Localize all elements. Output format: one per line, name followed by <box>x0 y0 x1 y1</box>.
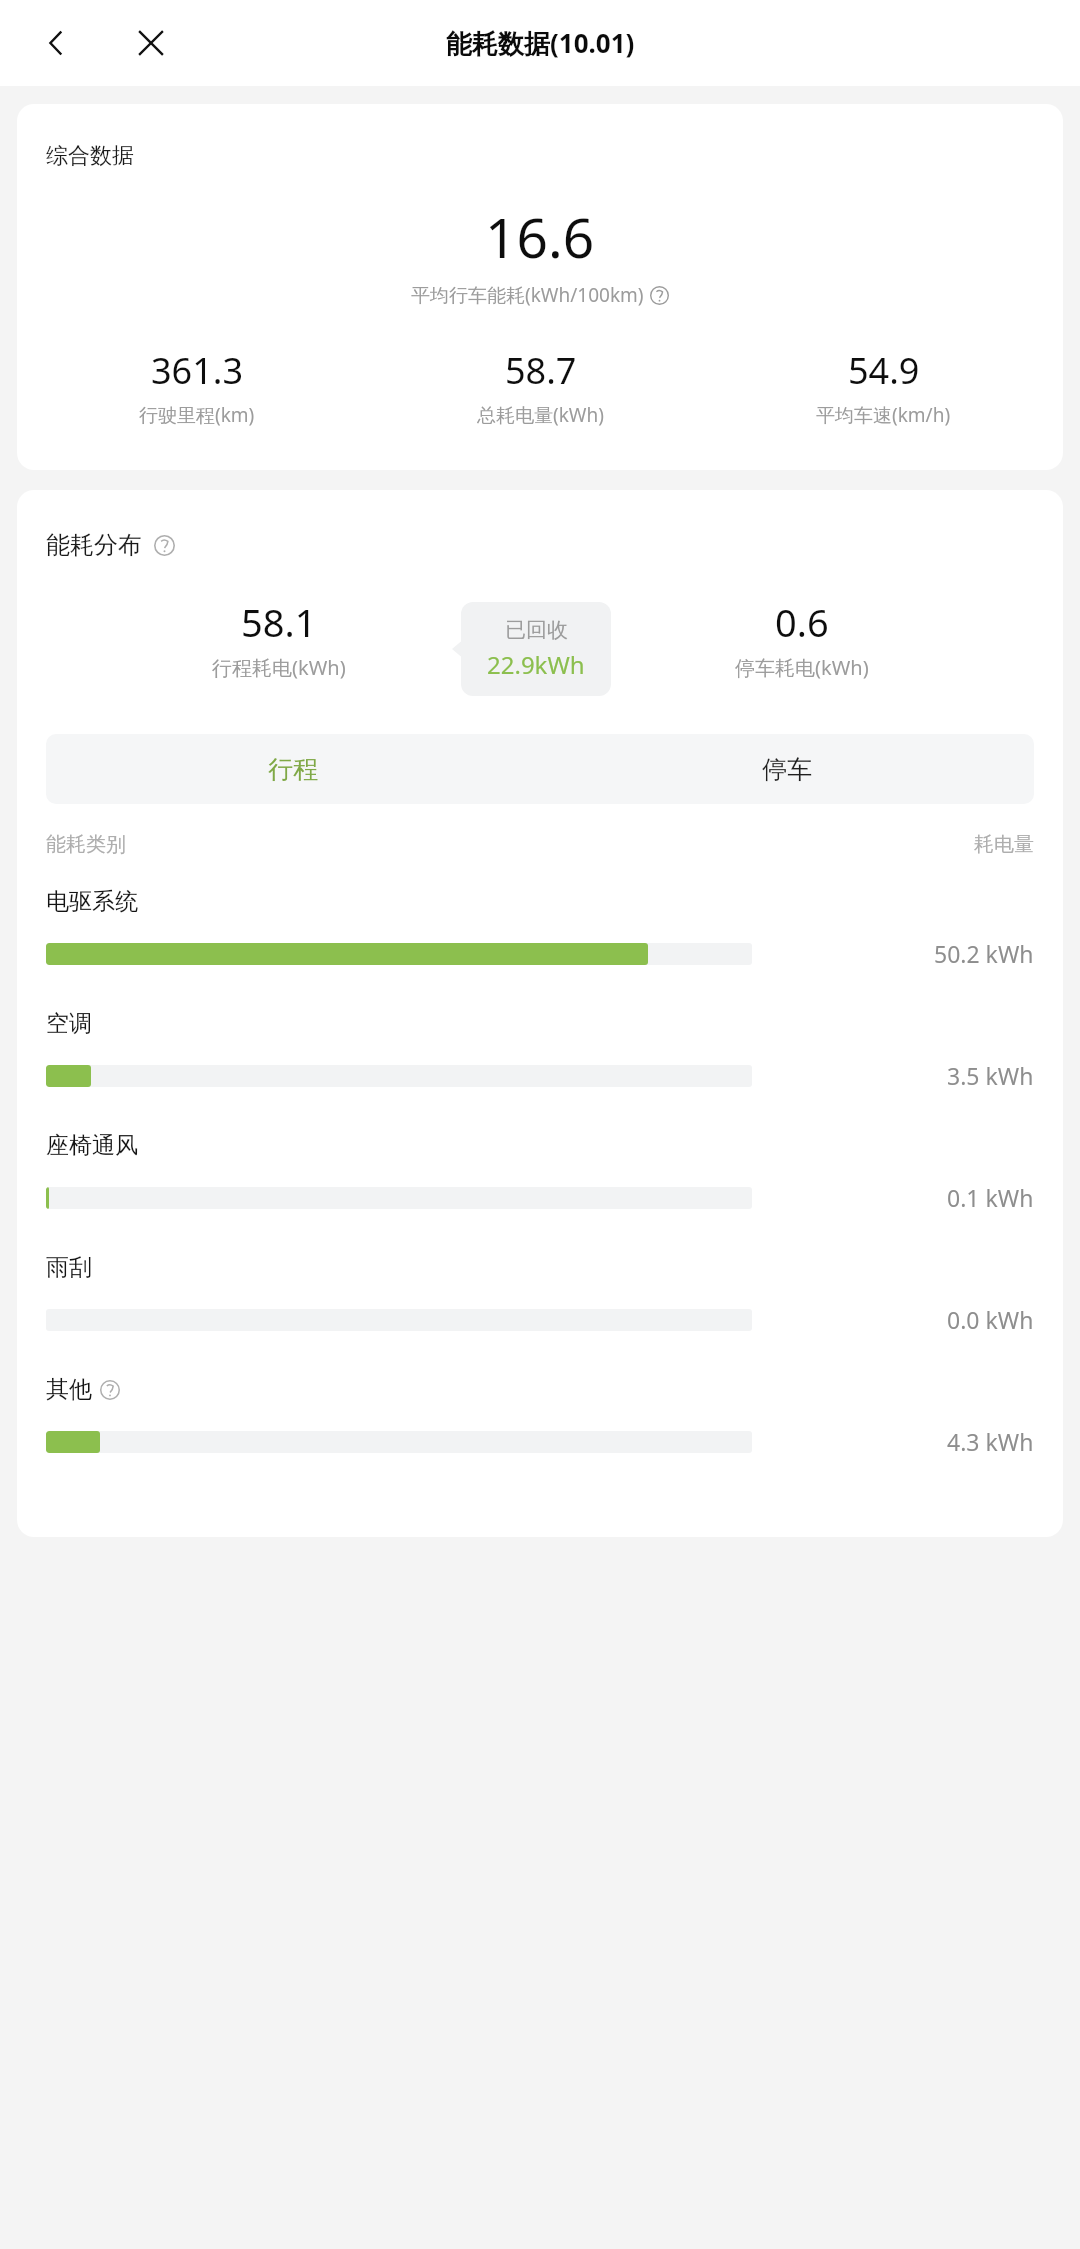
button[interactable]: Close <box>128 20 174 66</box>
staticText: 行驶里程(km) <box>139 402 255 428</box>
staticText: 22.9kWh <box>487 648 585 681</box>
staticText: 停车耗电(kWh) <box>735 654 869 681</box>
staticText: 能耗数据(10.01) <box>446 25 635 61</box>
staticText: 已回收 <box>505 617 568 643</box>
staticText: 其他 <box>46 1375 92 1404</box>
button[interactable]: 已回收 <box>461 602 611 696</box>
staticText: 50.2 kWh <box>934 938 1034 969</box>
staticText: 行程 <box>268 754 318 785</box>
staticText: 0.1 kWh <box>947 1182 1034 1213</box>
button[interactable]: 停车 <box>540 734 1034 804</box>
staticText: 雨刮 <box>46 1253 92 1282</box>
staticText: 3.5 kWh <box>947 1060 1034 1091</box>
staticText: 平均行车能耗(kWh/100km) <box>411 282 644 308</box>
staticText: 54.9 <box>848 346 920 395</box>
staticText: 总耗电量(kWh) <box>477 402 604 428</box>
button[interactable]: 行程 <box>46 734 540 804</box>
staticText: 58.7 <box>505 346 577 395</box>
staticText: 耗电量 <box>974 832 1034 857</box>
staticText: 停车 <box>762 754 812 785</box>
staticText: 58.1 <box>241 596 317 648</box>
staticText: 电驱系统 <box>46 887 138 916</box>
staticText: 座椅通风 <box>46 1131 138 1160</box>
staticText: 平均车速(km/h) <box>816 402 951 428</box>
staticText: 能耗类别 <box>46 832 126 857</box>
staticText: 空调 <box>46 1009 92 1038</box>
staticText: 能耗分布 <box>46 530 142 560</box>
staticText: 4.3 kWh <box>947 1426 1034 1457</box>
staticText: 361.3 <box>151 346 244 395</box>
staticText: 行程耗电(kWh) <box>212 654 346 681</box>
staticText: 16.6 <box>485 199 595 274</box>
staticText: 综合数据 <box>46 142 134 170</box>
button[interactable]: Back <box>34 21 78 65</box>
staticText: 0.0 kWh <box>947 1304 1034 1335</box>
staticText: 0.6 <box>775 596 829 648</box>
